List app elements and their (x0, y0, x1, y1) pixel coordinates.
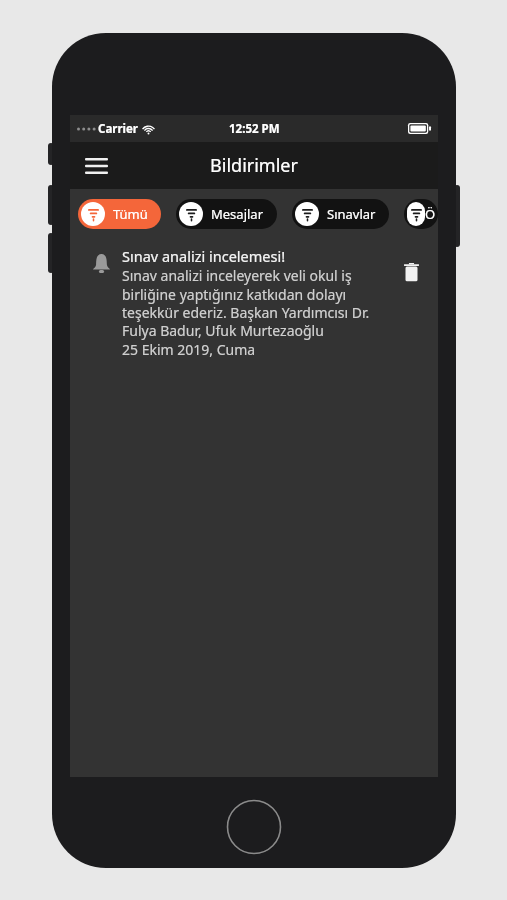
button[interactable]: Sınav analizi incelemesi! (70, 238, 438, 373)
button[interactable]: Tümü (78, 199, 161, 229)
button[interactable]: Open navigation menu (79, 149, 113, 183)
staticText: Sınavlar (327, 205, 376, 223)
staticText: 25 Ekim 2019, Cuma (122, 340, 256, 359)
staticText: Sınav analizi inceleyerek veli okul iş b… (122, 266, 388, 340)
button[interactable]: Delete notification (394, 256, 428, 290)
staticText: Carrier (98, 121, 138, 137)
staticText: Bildirimler (210, 153, 298, 178)
staticText: Mesajlar (211, 205, 264, 223)
staticText: Sınav analizi incelemesi! (122, 246, 286, 266)
button[interactable]: Ödevler (404, 199, 438, 229)
staticText: 12:52 PM (229, 121, 280, 137)
button[interactable]: Mesajlar (176, 199, 277, 229)
button[interactable]: Sınavlar (292, 199, 389, 229)
staticText: Tümü (113, 205, 148, 223)
